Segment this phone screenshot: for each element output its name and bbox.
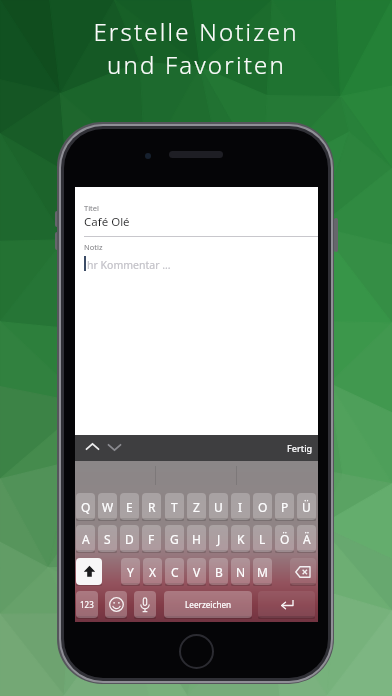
button[interactable]	[78, 198, 314, 235]
button[interactable]	[134, 591, 156, 618]
staticText: D	[125, 531, 134, 547]
button[interactable]	[82, 438, 103, 458]
staticText: U	[214, 499, 223, 515]
staticText: I	[238, 499, 243, 515]
button[interactable]: E	[120, 493, 139, 520]
staticText: P	[281, 499, 289, 515]
staticText: J	[217, 531, 221, 547]
staticText: C	[171, 564, 179, 580]
staticText: A	[82, 531, 90, 547]
button[interactable]: A	[76, 525, 95, 552]
staticText: Titel	[84, 203, 99, 213]
button[interactable]: Q	[76, 493, 95, 520]
button[interactable]: U	[209, 493, 228, 520]
staticText: Ö	[280, 531, 290, 547]
button[interactable]: T	[165, 493, 184, 520]
button[interactable]: F	[142, 525, 161, 552]
button[interactable]: 123	[76, 591, 98, 618]
button[interactable]: Ä	[297, 525, 316, 552]
staticText: K	[237, 531, 245, 547]
button[interactable]: W	[98, 493, 117, 520]
staticText: Y	[127, 564, 134, 580]
button[interactable]: B	[209, 558, 228, 585]
staticText: Erstelle Notizen	[93, 15, 299, 48]
staticText: und Favoriten	[107, 48, 286, 81]
button[interactable]: Fertig	[284, 436, 316, 459]
button[interactable]: I	[231, 493, 250, 520]
button[interactable]: Ü	[297, 493, 316, 520]
staticText: Café Olé	[84, 214, 130, 230]
staticText: G	[170, 531, 179, 547]
staticText: hr Kommentar ...	[87, 258, 171, 272]
staticText: H	[192, 531, 201, 547]
button[interactable]: H	[187, 525, 206, 552]
staticText: F	[148, 531, 155, 547]
button[interactable]: X	[143, 558, 162, 585]
staticText: S	[104, 531, 111, 547]
staticText: E	[126, 499, 133, 515]
button[interactable]: Z	[187, 493, 206, 520]
staticText: M	[257, 564, 268, 580]
button[interactable]: N	[231, 558, 250, 585]
staticText: W	[102, 499, 114, 515]
button[interactable]: K	[231, 525, 250, 552]
button[interactable]: L	[253, 525, 272, 552]
button[interactable]: R	[142, 493, 161, 520]
staticText: Ä	[303, 531, 311, 547]
button[interactable]	[78, 237, 314, 277]
button[interactable]	[105, 591, 127, 618]
staticText: N	[236, 564, 246, 580]
staticText: O	[258, 499, 268, 515]
button[interactable]: V	[187, 558, 206, 585]
button[interactable]	[179, 634, 214, 669]
button[interactable]	[104, 438, 125, 458]
button[interactable]: P	[275, 493, 294, 520]
button[interactable]: G	[165, 525, 184, 552]
staticText: Q	[81, 499, 91, 515]
button[interactable]	[76, 558, 102, 585]
button[interactable]: M	[253, 558, 272, 585]
button[interactable]	[258, 591, 315, 618]
button[interactable]: Leerzeichen	[164, 591, 252, 618]
button[interactable]: Y	[121, 558, 140, 585]
staticText: X	[149, 564, 157, 580]
button[interactable]: S	[98, 525, 117, 552]
button[interactable]: J	[209, 525, 228, 552]
staticText: Leerzeichen	[185, 599, 232, 610]
staticText: R	[148, 499, 156, 515]
button[interactable]: Ö	[275, 525, 294, 552]
staticText: T	[171, 499, 178, 515]
button[interactable]	[290, 558, 316, 585]
staticText: L	[259, 531, 266, 547]
staticText: Notiz	[84, 242, 103, 252]
button[interactable]: D	[120, 525, 139, 552]
button[interactable]: O	[253, 493, 272, 520]
staticText: V	[193, 564, 201, 580]
staticText: B	[215, 564, 223, 580]
staticText: Ü	[302, 499, 311, 515]
staticText: 123	[80, 599, 94, 610]
button[interactable]: C	[165, 558, 184, 585]
staticText: Fertig	[287, 442, 313, 454]
staticText: Z	[193, 499, 200, 515]
